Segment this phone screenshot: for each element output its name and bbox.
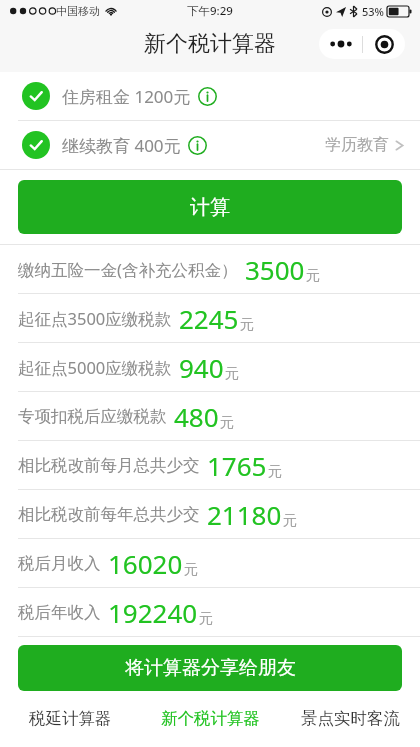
staticText: 元 <box>283 512 297 530</box>
staticText: 下午9:29 <box>187 3 233 19</box>
button[interactable]: 税后月收入 <box>0 539 420 587</box>
button[interactable]: 景点实时客流 <box>280 694 420 747</box>
button[interactable]: 新个税计算器 <box>140 694 280 747</box>
staticText: 新个税计算器 <box>144 30 276 58</box>
button[interactable]: 相比税改前每年总共少交 <box>0 490 420 538</box>
staticText: 继续教育 400元 <box>62 134 181 157</box>
staticText: 元 <box>225 365 239 383</box>
staticText: 53% <box>362 4 384 19</box>
staticText: 21180 <box>207 497 282 532</box>
staticText: 税后月收入 <box>18 553 101 574</box>
staticText: 住房租金 1200元 <box>62 85 191 108</box>
staticText: 缴纳五险一金(含补充公积金） <box>18 258 238 281</box>
staticText: 景点实时客流 <box>301 708 400 729</box>
staticText: 新个税计算器 <box>161 708 260 729</box>
staticText: 元 <box>199 610 213 628</box>
staticText: 元 <box>306 267 320 285</box>
button[interactable]: 计算 <box>18 180 402 234</box>
button[interactable]: 税延计算器 <box>0 694 140 747</box>
staticText: 1765 <box>207 448 267 483</box>
staticText: 计算 <box>190 195 230 220</box>
staticText: 专项扣税后应缴税款 <box>18 406 167 427</box>
staticText: 2245 <box>179 301 239 336</box>
staticText: 税延计算器 <box>29 708 112 729</box>
button[interactable]: 缴纳五险一金(含补充公积金） <box>0 245 420 293</box>
staticText: 相比税改前每月总共少交 <box>18 455 200 476</box>
staticText: 3500 <box>245 252 305 287</box>
button[interactable]: 起征点3500应缴税款 <box>0 294 420 342</box>
staticText: 学历教育 <box>325 135 389 155</box>
button[interactable]: 税后年收入 <box>0 588 420 636</box>
staticText: 元 <box>220 414 234 432</box>
button[interactable]: 继续教育 400元 <box>0 121 420 169</box>
button[interactable]: 将计算器分享给朋友 <box>18 645 402 691</box>
staticText: 192240 <box>108 595 198 630</box>
button[interactable]: 专项扣税后应缴税款 <box>0 392 420 440</box>
staticText: 将计算器分享给朋友 <box>125 656 296 680</box>
button[interactable]: 住房租金 1200元 <box>0 72 420 120</box>
staticText: 起征点3500应缴税款 <box>18 307 172 330</box>
staticText: 16020 <box>108 546 183 581</box>
staticText: 480 <box>174 399 219 434</box>
staticText: 起征点5000应缴税款 <box>18 356 172 379</box>
staticText: 元 <box>240 316 254 334</box>
button[interactable]: 起征点5000应缴税款 <box>0 343 420 391</box>
staticText: 940 <box>179 350 224 385</box>
staticText: 相比税改前每年总共少交 <box>18 504 200 525</box>
staticText: 中国移动 <box>56 4 100 18</box>
staticText: 元 <box>268 463 282 481</box>
button[interactable]: 相比税改前每月总共少交 <box>0 441 420 489</box>
staticText: 元 <box>184 561 198 579</box>
staticText: 税后年收入 <box>18 602 101 623</box>
button[interactable]: More and close <box>319 29 405 59</box>
